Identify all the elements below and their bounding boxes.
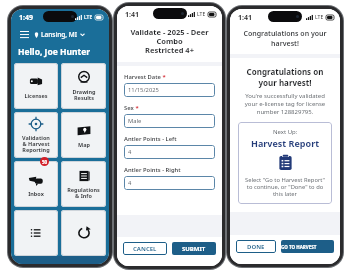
button[interactable]: Drawing Results <box>61 63 106 109</box>
button[interactable]: 4 <box>124 176 215 190</box>
button[interactable]: CANCEL <box>123 242 167 255</box>
button[interactable]: Map <box>61 112 106 158</box>
button[interactable]: SUBMIT <box>172 242 216 255</box>
staticText: You're successfully validated your e-lic… <box>238 92 332 116</box>
staticText: SUBMIT <box>182 245 206 253</box>
button[interactable]: Menu <box>17 27 31 41</box>
staticText: Inbox <box>28 190 44 197</box>
staticText: Licenses <box>24 92 48 99</box>
button[interactable] <box>61 210 106 256</box>
staticText: GO TO HARVEST REPORT <box>281 244 334 250</box>
staticText: * <box>161 73 166 81</box>
button[interactable]: 4 <box>124 145 215 159</box>
staticText: Harvest Date <box>124 73 161 81</box>
button[interactable]: Validation & Harvest Reporting <box>14 112 58 158</box>
button[interactable] <box>14 210 58 256</box>
button[interactable]: Male <box>124 114 215 128</box>
staticText: Select "Go to Harvest Report" to continu… <box>244 176 326 198</box>
staticText: LTE <box>197 11 206 18</box>
staticText: Map <box>78 141 90 148</box>
staticText: Antler Points - Right <box>124 166 181 174</box>
button[interactable]: 11/15/2025 <box>124 83 215 97</box>
staticText: 1:41 <box>125 10 139 20</box>
staticText: CANCEL <box>133 245 157 253</box>
staticText: LTE <box>315 14 324 21</box>
staticText: 50 <box>42 159 48 165</box>
staticText: LTE <box>84 14 93 21</box>
staticText: Harvest Report <box>251 137 320 149</box>
staticText: Sex <box>124 104 134 112</box>
staticText: Regulations & Info <box>67 186 100 200</box>
button[interactable]: Inbox <box>14 161 58 207</box>
staticText: Drawing Results <box>72 88 96 102</box>
staticText: Congratulations on your harvest! <box>238 66 332 88</box>
staticText: 1:41 <box>238 13 252 23</box>
staticText: DONE <box>247 243 265 251</box>
staticText: Hello, Joe Hunter <box>18 46 91 58</box>
staticText: 4 <box>128 148 132 156</box>
staticText: 4 <box>128 179 132 187</box>
button[interactable]: Licenses <box>14 63 58 109</box>
button[interactable]: Regulations & Info <box>61 161 106 207</box>
button[interactable]: DONE <box>236 240 276 253</box>
staticText: Congratulations on your harvest! <box>236 29 334 49</box>
staticText: Validate - 2025 - Deer Combo Restricted … <box>125 27 214 55</box>
staticText: Antler Points - Left <box>124 135 177 143</box>
staticText: * <box>134 104 139 112</box>
staticText: 1:49 <box>19 13 33 23</box>
staticText: 11/15/2025 <box>128 86 159 94</box>
staticText: Lansing, MI <box>41 30 78 39</box>
staticText: Validation & Harvest Reporting <box>16 134 56 154</box>
staticText: Next Up: <box>273 128 298 136</box>
button[interactable]: Lansing, MI <box>34 30 85 39</box>
button[interactable]: GO TO HARVEST REPORT <box>281 240 334 253</box>
staticText: Male <box>128 117 142 125</box>
